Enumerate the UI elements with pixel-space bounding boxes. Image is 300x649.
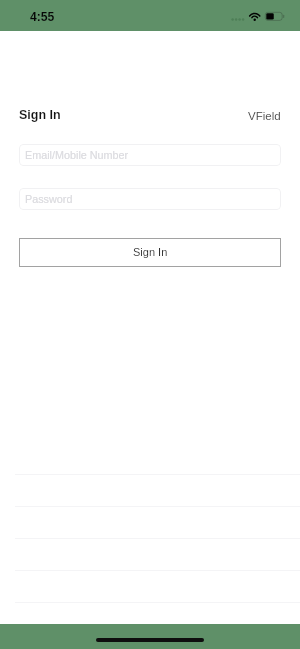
staticText: Sign In [19, 108, 61, 122]
button[interactable]: Password [19, 188, 281, 210]
staticText: 4:55 [30, 10, 55, 24]
button[interactable]: Email/Mobile Number [19, 144, 281, 166]
staticText: Sign In [133, 246, 168, 258]
staticText: Password [25, 193, 73, 205]
staticText: VField [248, 110, 281, 123]
staticText: Email/Mobile Number [25, 149, 129, 161]
button[interactable]: Sign In [19, 238, 281, 267]
